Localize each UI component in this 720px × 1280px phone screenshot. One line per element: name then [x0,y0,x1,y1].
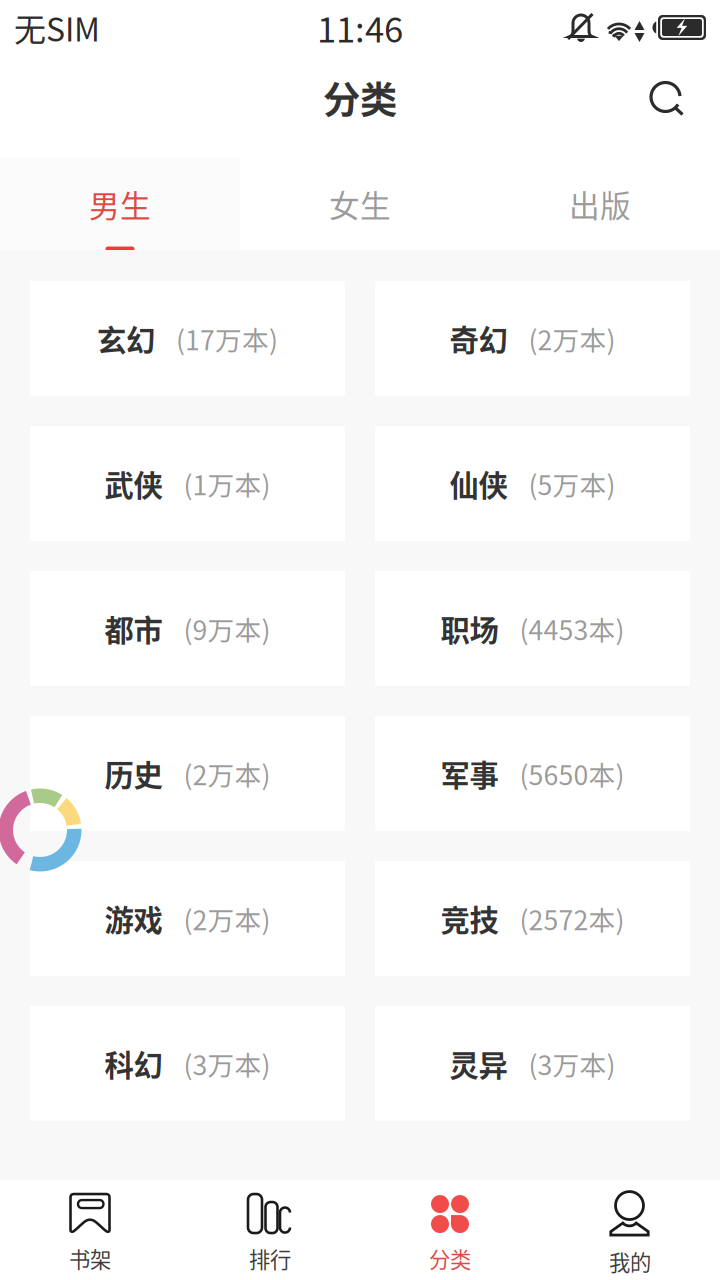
staticText: (5万本) [528,464,615,503]
staticText: 分类 [323,70,397,125]
button[interactable]: 玄幻 [30,281,345,396]
staticText: 出版 [569,182,631,226]
staticText: (2572本) [519,899,624,938]
staticText: (1万本) [183,464,270,503]
button[interactable]: 男生 [0,158,240,250]
button[interactable]: 武侠 [30,426,345,541]
staticText: (5650本) [519,754,624,793]
staticText: 游戏 [104,897,162,940]
staticText: (2万本) [183,899,270,938]
staticText: (3万本) [528,1044,615,1083]
staticText: 排行 [249,1243,291,1274]
button[interactable]: 分类 [360,1180,540,1280]
staticText: 女生 [329,182,391,226]
button[interactable]: 仙侠 [375,426,690,541]
staticText: (3万本) [183,1044,270,1083]
button[interactable]: 竞技 [375,861,690,976]
staticText: 奇幻 [449,317,507,360]
button[interactable]: 游戏 [30,861,345,976]
button[interactable]: 灵异 [375,1006,690,1121]
button[interactable]: 历史 [30,716,345,831]
staticText: (2万本) [528,319,615,358]
button[interactable]: 书架 [0,1180,180,1280]
button[interactable]: 都市 [30,571,345,686]
staticText: 灵异 [449,1042,507,1085]
staticText: 无SIM [14,4,100,51]
staticText: 书架 [69,1243,111,1274]
staticText: 武侠 [104,462,162,505]
staticText: 11:46 [317,2,403,53]
staticText: 我的 [609,1246,651,1277]
staticText: 都市 [104,607,162,650]
staticText: 分类 [429,1243,471,1274]
button[interactable]: 军事 [375,716,690,831]
staticText: (9万本) [183,609,270,648]
staticText: 玄幻 [97,317,155,360]
button[interactable]: 我的 [540,1180,720,1280]
button[interactable]: 排行 [180,1180,360,1280]
staticText: 仙侠 [449,462,507,505]
staticText: (17万本) [176,319,278,358]
button[interactable]: 科幻 [30,1006,345,1121]
staticText: (4453本) [519,609,624,648]
staticText: 历史 [104,752,162,795]
staticText: 男生 [89,182,151,226]
button[interactable]: 女生 [240,158,480,250]
staticText: (2万本) [183,754,270,793]
staticText: 竞技 [440,897,498,940]
staticText: 职场 [440,607,498,650]
staticText: 科幻 [104,1042,162,1085]
staticText: 军事 [440,752,498,795]
button[interactable]: 搜索 [632,65,702,135]
button[interactable]: 出版 [480,158,720,250]
button[interactable]: 奇幻 [375,281,690,396]
button[interactable]: 职场 [375,571,690,686]
